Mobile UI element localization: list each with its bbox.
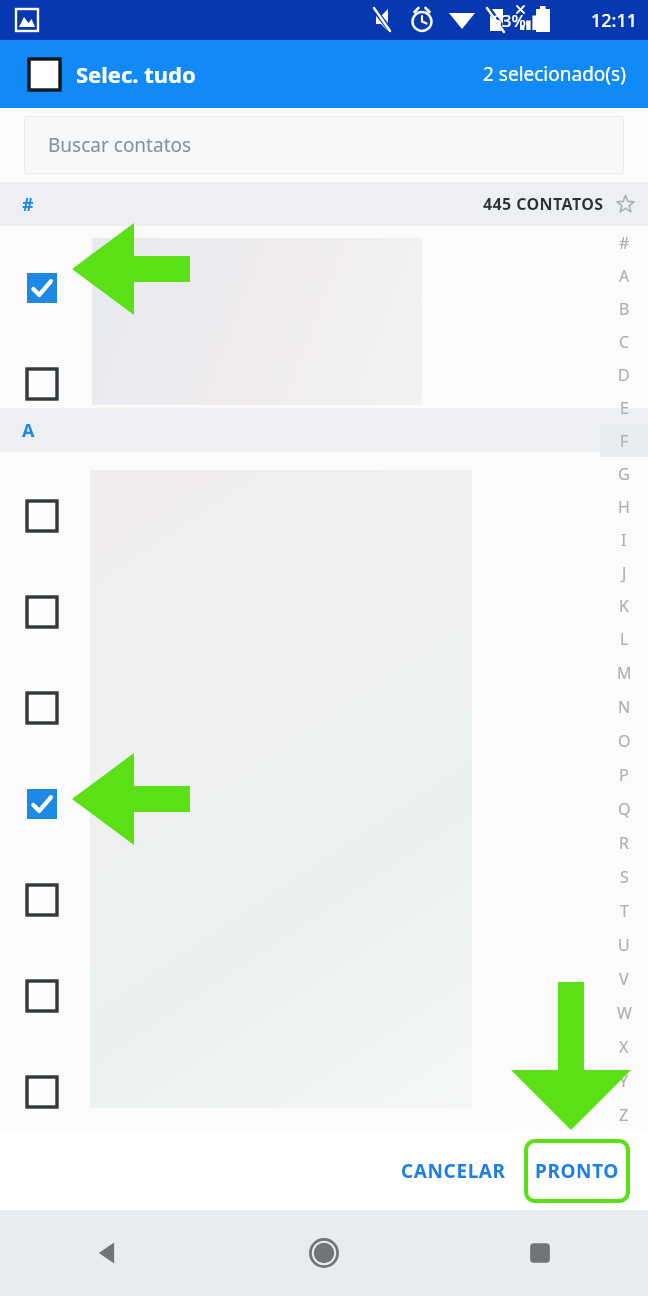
staticText: Q [618, 798, 631, 820]
staticText: Buscar contatos [48, 132, 192, 158]
staticText: S [620, 866, 629, 888]
staticText: O [618, 730, 631, 752]
button[interactable]: O [600, 724, 648, 758]
staticText: 2 selecionado(s) [483, 61, 626, 87]
staticText: R [619, 832, 629, 854]
button[interactable]: I [600, 523, 648, 556]
button[interactable]: T [600, 894, 648, 928]
staticText: Y [619, 1070, 629, 1092]
staticText: F [620, 430, 629, 452]
button[interactable]: Z [600, 1098, 648, 1132]
button[interactable]: CANCELAR [383, 1140, 524, 1202]
button[interactable]: W [600, 996, 648, 1030]
staticText: T [620, 900, 629, 922]
button[interactable]: Contato selecionado [8, 770, 76, 838]
staticText: V [619, 968, 629, 990]
button[interactable]: # [600, 226, 648, 259]
staticText: A [22, 418, 35, 443]
button[interactable]: Back [0, 1210, 216, 1296]
staticText: G [618, 463, 630, 485]
staticText: U [618, 934, 630, 956]
staticText: E [620, 397, 629, 419]
staticText: K [619, 595, 629, 617]
button[interactable]: Contato não selecionado [8, 350, 76, 418]
staticText: Selec. tudo [76, 59, 196, 89]
staticText: A [619, 265, 630, 287]
button[interactable]: Contato não selecionado [8, 962, 76, 1030]
button[interactable]: L [600, 622, 648, 656]
button[interactable]: A [600, 259, 648, 292]
staticText: # [619, 232, 630, 254]
button[interactable]: H [600, 490, 648, 523]
staticText: H [618, 496, 630, 518]
button[interactable]: R [600, 826, 648, 860]
button[interactable]: Recents [432, 1210, 648, 1296]
staticText: 63% [492, 9, 526, 32]
staticText: CANCELAR [401, 1158, 506, 1184]
staticText: B [619, 298, 630, 320]
staticText: M [617, 662, 632, 684]
staticText: # [22, 192, 34, 217]
button[interactable]: Buscar contatos [24, 116, 624, 174]
button[interactable]: U [600, 928, 648, 962]
staticText: 12:11 [591, 8, 638, 33]
button[interactable]: Contato selecionado [8, 254, 76, 322]
button[interactable]: E [600, 391, 648, 424]
button[interactable]: Home [216, 1210, 432, 1296]
staticText: PRONTO [535, 1158, 619, 1184]
button[interactable]: Q [600, 792, 648, 826]
staticText: J [622, 562, 627, 584]
button[interactable]: N [600, 690, 648, 724]
button[interactable]: Selecionar tudo [18, 48, 70, 100]
button[interactable]: D [600, 358, 648, 391]
button[interactable]: F [600, 424, 648, 457]
button[interactable]: G [600, 457, 648, 490]
staticText: Z [619, 1104, 629, 1126]
button[interactable]: B [600, 292, 648, 325]
staticText: X [619, 1036, 629, 1058]
staticText: I [621, 529, 627, 551]
staticText: 445 CONTATOS [483, 193, 604, 215]
button[interactable]: C [600, 325, 648, 358]
button[interactable]: PRONTO [524, 1139, 630, 1203]
staticText: L [620, 628, 629, 650]
staticText: D [618, 364, 630, 386]
staticText: C [619, 331, 630, 353]
button[interactable]: Contato não selecionado [8, 578, 76, 646]
button[interactable]: Contato não selecionado [8, 674, 76, 742]
button[interactable]: Y [600, 1064, 648, 1098]
button[interactable]: Favoritos [614, 193, 636, 215]
button[interactable]: S [600, 860, 648, 894]
button[interactable]: Contato não selecionado [8, 866, 76, 934]
button[interactable]: V [600, 962, 648, 996]
staticText: P [619, 764, 629, 786]
button[interactable]: Contato não selecionado [8, 482, 76, 550]
staticText: W [617, 1002, 632, 1024]
button[interactable]: X [600, 1030, 648, 1064]
button[interactable]: M [600, 656, 648, 690]
button[interactable]: K [600, 589, 648, 622]
button[interactable]: P [600, 758, 648, 792]
button[interactable]: J [600, 556, 648, 589]
button[interactable]: Contato não selecionado [8, 1058, 76, 1126]
staticText: N [618, 696, 631, 718]
